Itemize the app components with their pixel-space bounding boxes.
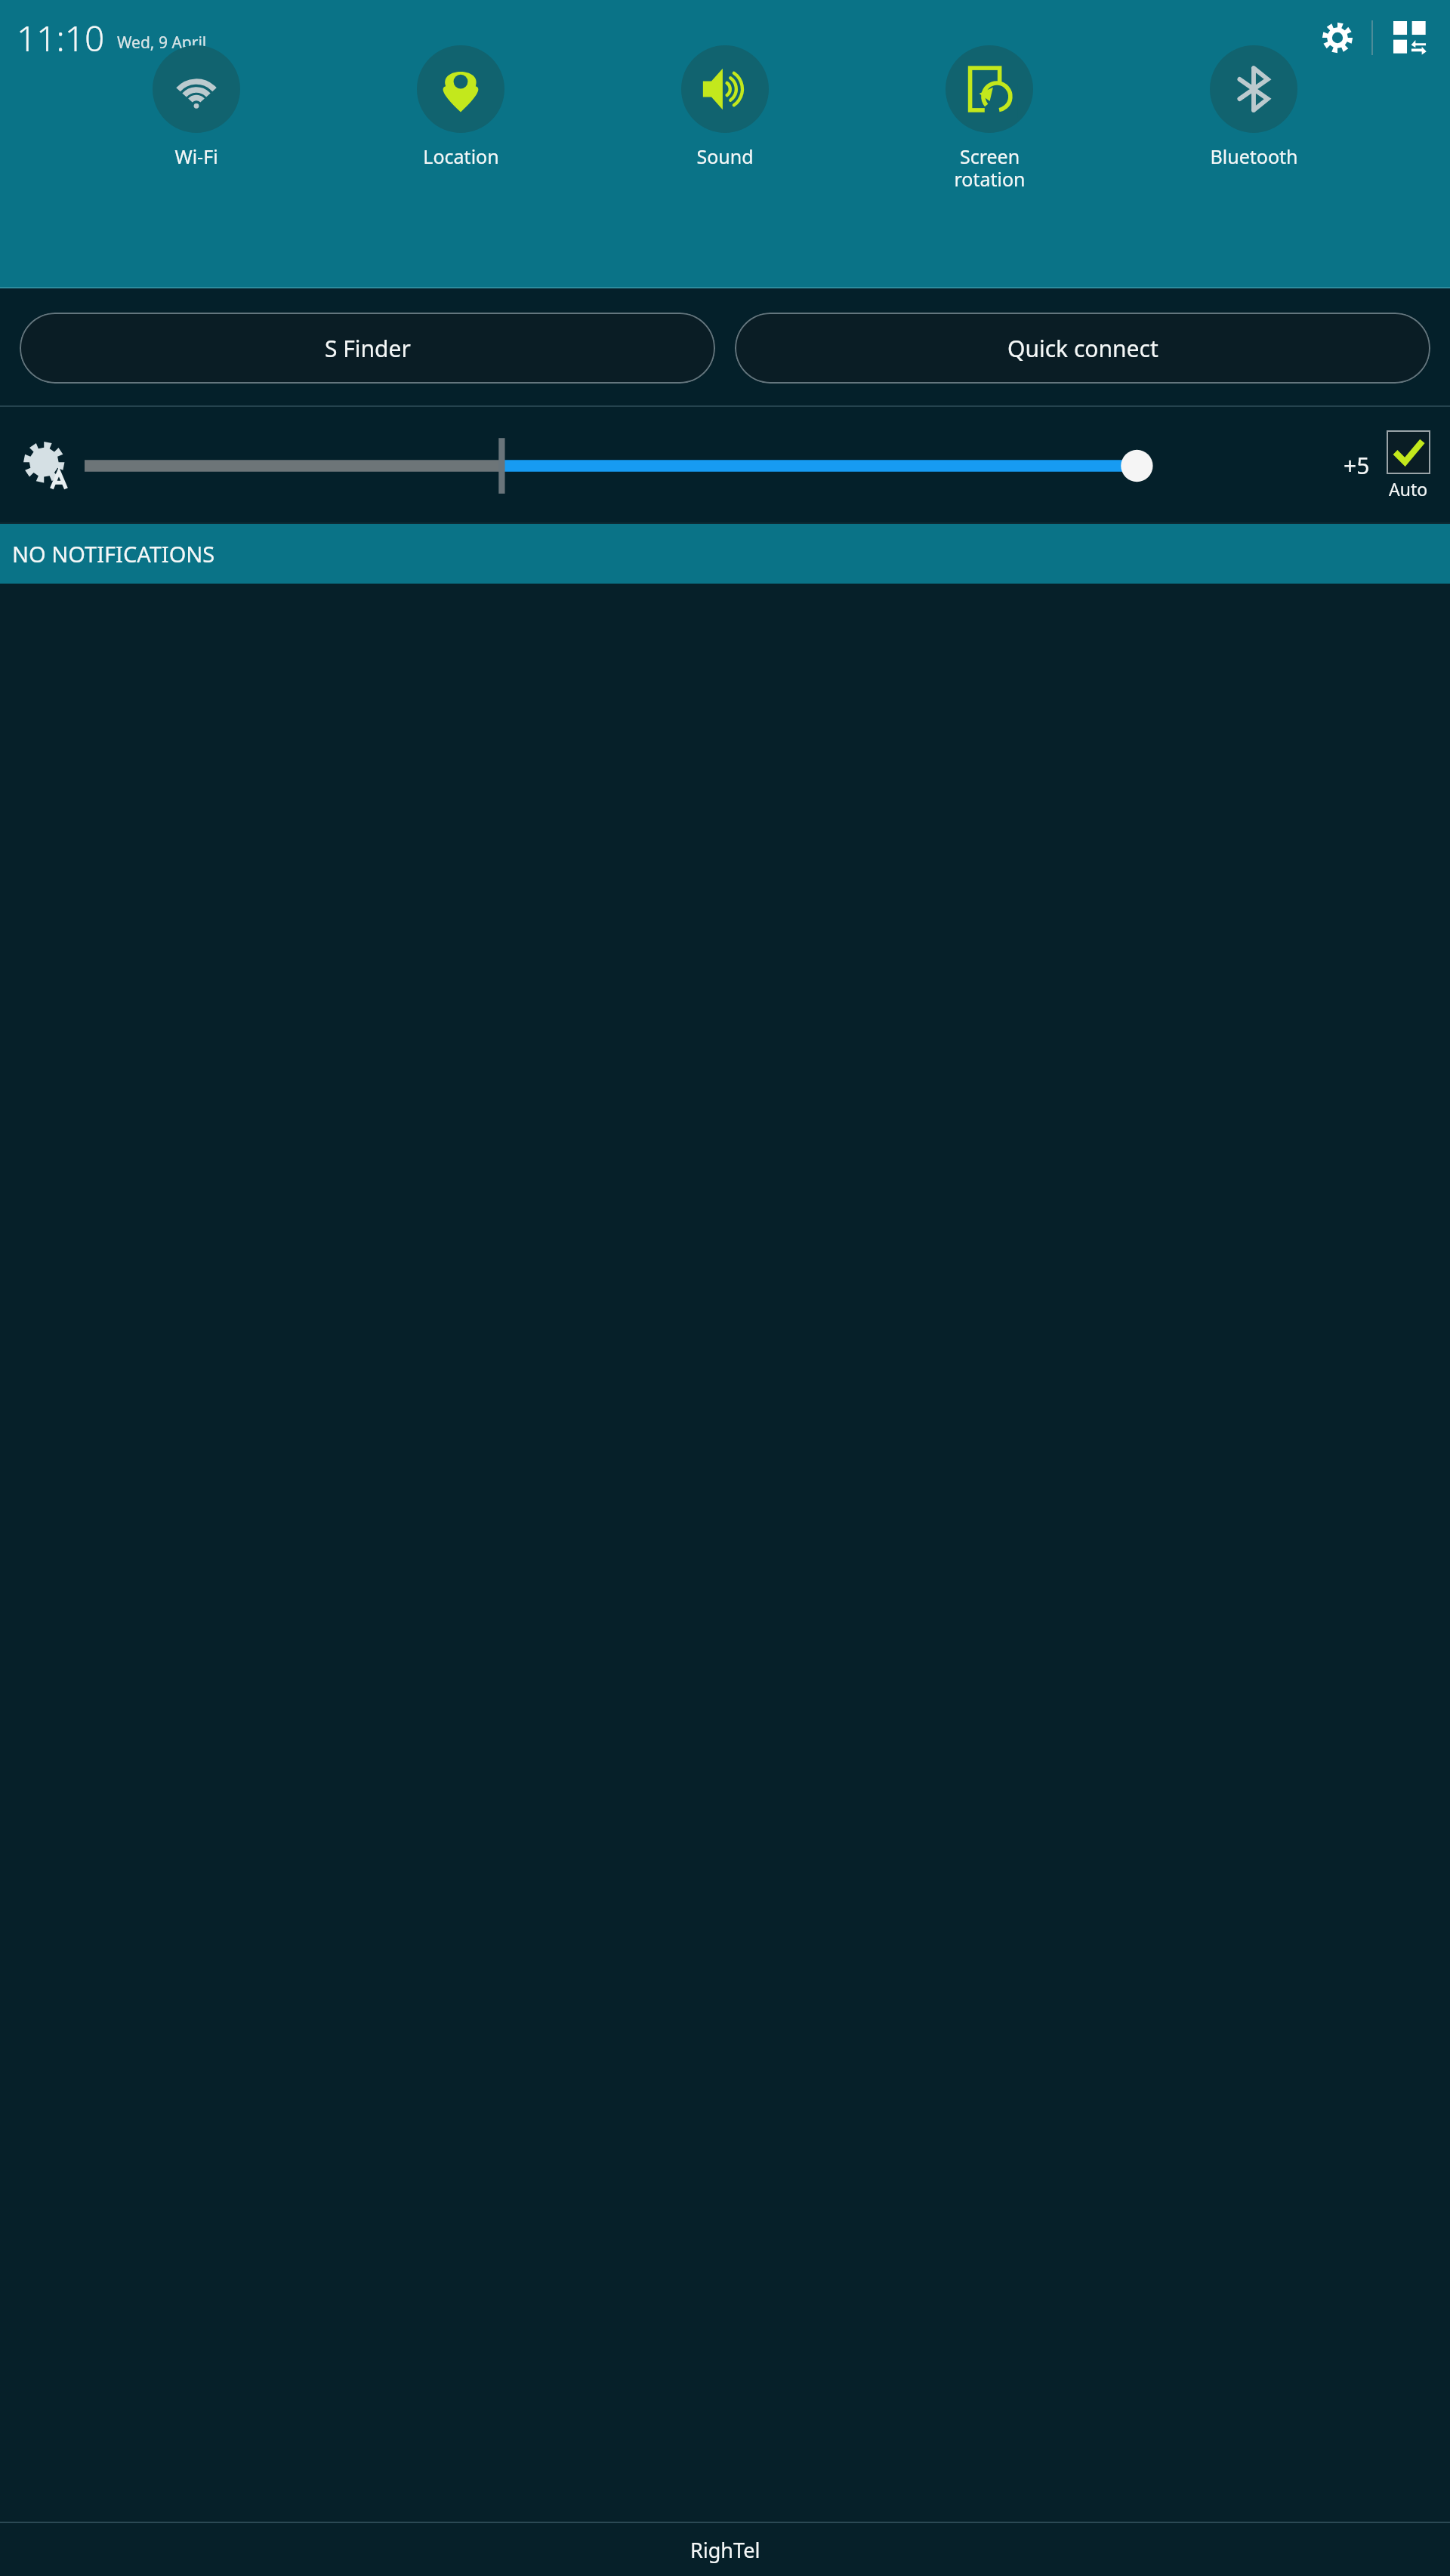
staticText: Wi-Fi <box>174 143 218 169</box>
button[interactable]: NO NOTIFICATIONS <box>0 524 1450 584</box>
staticText: Wed, 9 April <box>117 32 207 54</box>
staticText: Auto <box>1389 477 1428 501</box>
staticText: Sound <box>696 143 754 169</box>
staticText: Quick connect <box>1007 333 1158 364</box>
staticText: Screen rotation <box>954 143 1026 192</box>
staticText: Location <box>423 143 499 169</box>
staticText: S Finder <box>325 333 411 364</box>
button[interactable]: Settings <box>1313 13 1362 63</box>
button[interactable]: Screen rotation <box>921 42 1057 192</box>
button[interactable]: Edit quick settings <box>1385 13 1435 63</box>
button[interactable]: Wi-Fi <box>128 42 264 169</box>
button[interactable]: Bluetooth <box>1186 42 1322 169</box>
button[interactable]: Quick connect <box>735 313 1430 384</box>
button[interactable]: Sound <box>657 42 793 169</box>
button[interactable] <box>85 431 1330 501</box>
staticText: 11:10 <box>17 14 105 62</box>
button[interactable]: Auto brightness <box>15 433 80 498</box>
button[interactable]: Auto <box>1387 430 1430 501</box>
staticText: +5 <box>1344 450 1370 481</box>
staticText: NO NOTIFICATIONS <box>12 539 215 569</box>
staticText: RighTel <box>690 2536 760 2564</box>
staticText: Bluetooth <box>1210 143 1298 169</box>
button[interactable]: Location <box>393 42 529 169</box>
button[interactable]: S Finder <box>20 313 715 384</box>
